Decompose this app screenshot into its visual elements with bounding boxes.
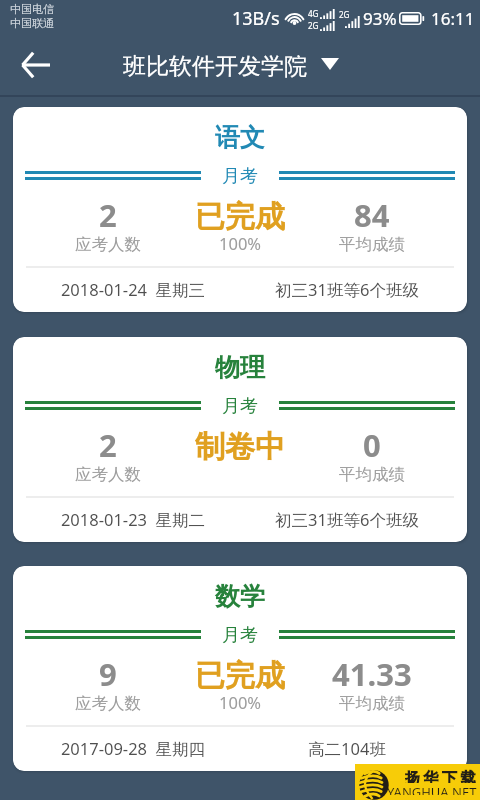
staticText: 2 [99,424,117,458]
staticText: 2 [99,194,117,228]
staticText: 2017-09-28 星期四 [26,737,240,760]
staticText: 平均成绩 [339,693,405,714]
staticText: 2G [308,20,319,31]
staticText: 初三31班等6个班级 [240,508,454,531]
staticText: 数学 [215,581,265,612]
staticText: 2G [339,9,350,20]
staticText: 0 [363,424,381,458]
staticText: 9 [99,653,117,687]
staticText: 2018-01-24 星期三 [26,278,240,301]
staticText: 100% [219,232,262,254]
staticText: 100% [219,691,262,713]
button[interactable]: 数学 [13,566,467,771]
staticText: 月考 [222,165,258,188]
staticText: 4G [308,8,319,19]
staticText: 初三31班等6个班级 [240,278,454,301]
button[interactable]: 物理 [13,337,467,542]
staticText: 41.33 [332,653,412,687]
staticText: 16:11 [431,7,475,30]
staticText: 平均成绩 [339,464,405,485]
staticText: 月考 [222,395,258,418]
staticText: 平均成绩 [339,234,405,255]
button[interactable]: Back [12,43,60,91]
staticText: 93% [363,7,397,30]
staticText: 13B/s [232,6,280,31]
staticText: 已完成 [195,198,285,232]
staticText: 应考人数 [75,234,141,255]
button[interactable]: 班比软件开发学院 [123,52,339,81]
staticText: 2018-01-23 星期二 [26,508,240,531]
staticText: 月考 [222,624,258,647]
staticText: 制卷中 [195,428,285,462]
staticText: 高二104班 [240,737,454,760]
button[interactable]: 语文 [13,107,467,312]
staticText: 扬华下载 [405,769,480,783]
staticText: 语文 [215,122,265,153]
staticText: 应考人数 [75,464,141,485]
staticText: 中国电信 [10,2,54,16]
staticText: 物理 [215,352,265,383]
staticText: 班比软件开发学院 [123,52,307,81]
staticText: YANGHUA.NET [387,783,477,795]
staticText: 中国联通 [10,16,54,30]
staticText: 已完成 [195,657,285,691]
staticText: 应考人数 [75,693,141,714]
staticText: 84 [354,194,390,228]
